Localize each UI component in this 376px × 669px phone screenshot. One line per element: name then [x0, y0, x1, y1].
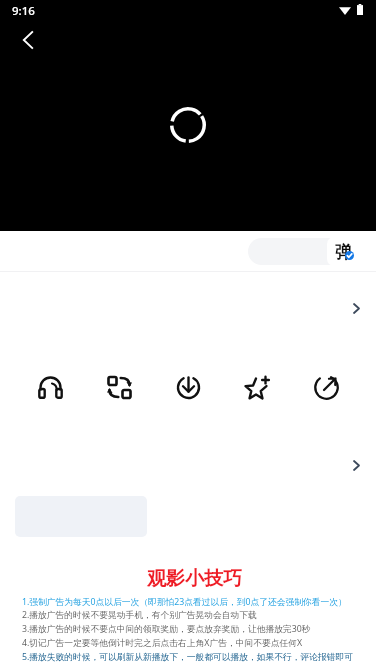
- button[interactable]: 弹: [327, 237, 376, 266]
- staticText: 5.播放失败的时候，可以刷新从新播放下，一般都可以播放，如果不行，评论报错即可: [22, 651, 354, 663]
- button[interactable]: Cast to TV: [97, 365, 141, 409]
- button[interactable]: [0, 432, 376, 494]
- button[interactable]: [248, 238, 360, 265]
- staticText: 观影小技巧: [147, 567, 242, 591]
- staticText: 1.强制广告为每天0点以后一次（即那怕23点看过以后，到0点了还会强制你看一次）: [22, 596, 347, 608]
- staticText: 9:16: [12, 3, 35, 19]
- button[interactable]: Share: [304, 365, 348, 409]
- staticText: 2.播放广告的时候不要晃动手机，有个别广告晃动会自动下载: [22, 609, 257, 621]
- button[interactable]: Download: [166, 365, 210, 409]
- button[interactable]: Audio only: [28, 365, 72, 409]
- button[interactable]: [0, 276, 376, 340]
- staticText: 弹: [335, 242, 352, 263]
- button[interactable]: Back: [11, 23, 45, 57]
- staticText: 4.切记广告一定要等他倒计时完之后点击右上角X广告，中间不要点任何X: [22, 637, 303, 649]
- staticText: 3.播放广告的时候不要点中间的领取奖励，要点放弃奖励，让他播放完30秒: [22, 623, 311, 635]
- button[interactable]: Add to favorites: [235, 365, 279, 409]
